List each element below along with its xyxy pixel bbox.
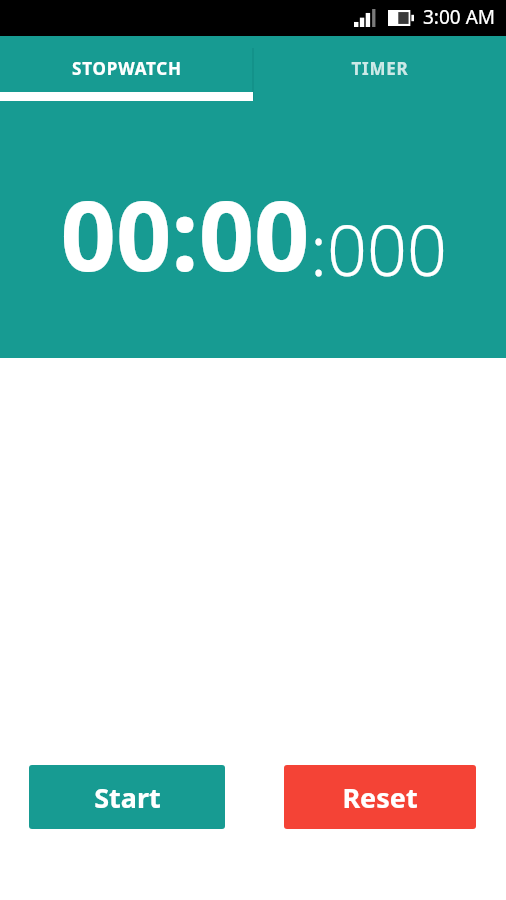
staticText: Reset (342, 779, 418, 816)
button[interactable]: TIMER (253, 36, 506, 100)
button[interactable]: STOPWATCH (0, 36, 253, 100)
button[interactable]: Reset (284, 765, 476, 829)
other: Battery (388, 10, 414, 26)
staticText: Start (94, 779, 161, 816)
staticText: :000 (310, 201, 447, 296)
staticText: 00:00 (60, 167, 310, 299)
other: Signal strength (354, 9, 380, 27)
staticText: STOPWATCH (72, 57, 182, 80)
button[interactable]: Start (29, 765, 225, 829)
staticText: TIMER (351, 57, 409, 80)
staticText: 3:00 AM (423, 4, 496, 30)
